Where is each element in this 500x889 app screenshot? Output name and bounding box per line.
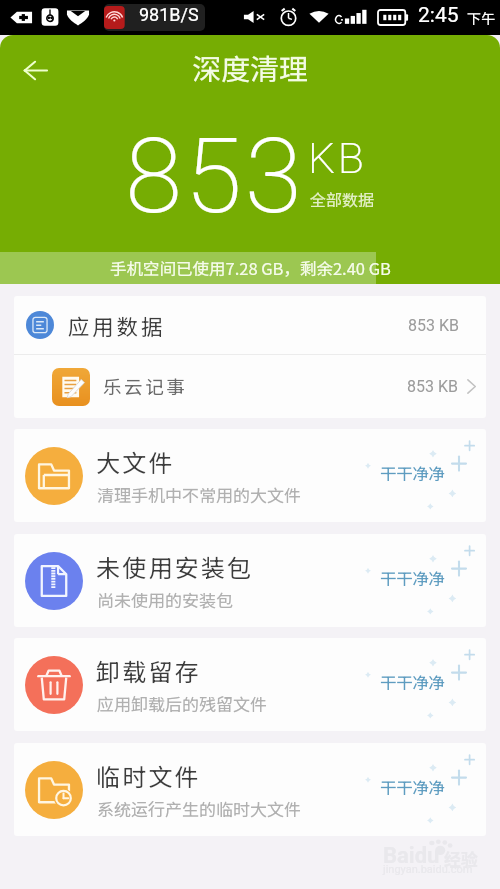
staticText: 乐云记事 <box>103 373 188 400</box>
staticText: 应用数据 <box>68 310 166 341</box>
button[interactable]: 临时文件 <box>14 743 486 836</box>
button[interactable]: 乐云记事 <box>14 355 486 418</box>
staticText: 未使用安装包 <box>96 549 254 584</box>
staticText: 981B/S <box>139 4 199 25</box>
staticText: 清理手机中不常用的大文件 <box>97 482 301 507</box>
staticText: jingyan.baidu.com <box>383 863 473 876</box>
staticText: 全部数据 <box>310 187 375 210</box>
staticText: 853 KB <box>407 377 458 396</box>
staticText: 尚未使用的安装包 <box>97 587 233 612</box>
staticText: 2:45 <box>418 3 459 28</box>
button[interactable]: 大文件 <box>14 429 486 522</box>
button[interactable]: 未使用安装包 <box>14 534 486 627</box>
staticText: 853 KB <box>408 316 459 335</box>
staticText: 下午 <box>467 8 495 28</box>
staticText: 经验 <box>444 846 478 871</box>
staticText: 853 <box>125 116 305 238</box>
button[interactable]: Back <box>13 48 57 92</box>
staticText: 临时文件 <box>96 758 201 793</box>
button[interactable]: 卸载留存 <box>14 638 486 731</box>
staticText: 干干净净 <box>380 566 445 590</box>
staticText: 卸载留存 <box>96 653 201 688</box>
staticText: 干干净净 <box>380 461 445 485</box>
staticText: 深度清理 <box>192 46 309 88</box>
staticText: 应用卸载后的残留文件 <box>97 691 267 716</box>
staticText: 干干净净 <box>380 775 445 799</box>
staticText: KB <box>308 133 367 183</box>
staticText: 大文件 <box>96 444 175 479</box>
button[interactable]: 应用数据 <box>14 296 486 354</box>
staticText: Baidu <box>383 843 440 869</box>
staticText: 干干净净 <box>380 670 445 694</box>
staticText: 手机空间已使用7.28 GB，剩余2.40 GB <box>110 256 391 280</box>
staticText: 系统运行产生的临时大文件 <box>97 796 301 821</box>
